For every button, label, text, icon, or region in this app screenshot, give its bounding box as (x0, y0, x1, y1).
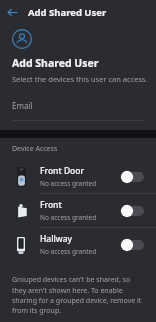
staticText: Select the devices this user can access. (12, 74, 148, 84)
button[interactable]: Front (0, 194, 156, 227)
button[interactable]: Front Door (0, 160, 156, 193)
staticText: Add Shared User (28, 6, 107, 19)
button[interactable]: Hallway (0, 228, 156, 261)
staticText: Front (40, 199, 62, 211)
staticText: No access granted (40, 247, 97, 256)
button[interactable]: Toggle access (120, 238, 144, 252)
staticText: Hallway (40, 233, 73, 245)
button[interactable]: Back (0, 0, 24, 24)
staticText: Add Shared User (12, 56, 99, 70)
staticText: No access granted (40, 213, 97, 222)
button[interactable]: Toggle access (120, 170, 144, 184)
staticText: Email (12, 100, 33, 111)
staticText: Grouped devices can't be shared, so they… (12, 275, 144, 315)
staticText: No access granted (40, 179, 97, 188)
staticText: Front Door (40, 165, 85, 177)
staticText: Device Access (12, 144, 58, 154)
button[interactable]: Toggle access (120, 204, 144, 218)
